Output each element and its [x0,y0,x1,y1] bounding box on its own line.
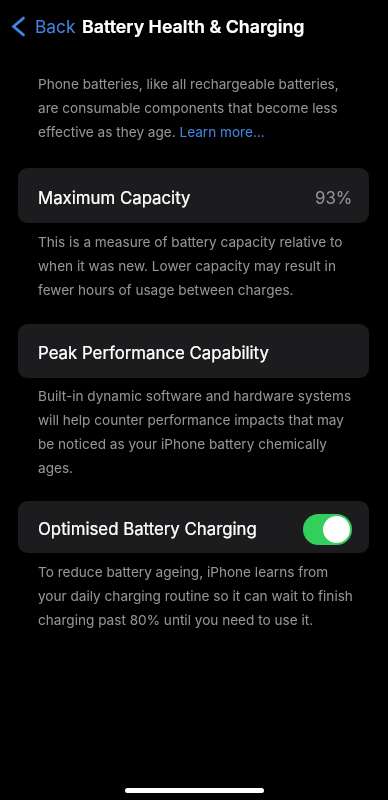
staticText: Optimised Battery Charging [38,519,257,539]
staticText: Built-in dynamic software and hardware s… [38,382,352,478]
staticText: Battery Health & Charging [82,16,305,38]
button[interactable]: Optimised Battery Charging [303,514,352,545]
staticText: Back [35,16,76,37]
staticText: This is a measure of battery capacity re… [38,228,343,300]
button[interactable]: Back [0,13,82,40]
staticText: Phone batteries, like all rechargeable b… [38,70,339,142]
button[interactable]: Learn more [179,123,265,141]
button[interactable]: Peak Performance Capability [18,324,369,378]
staticText: Peak Performance Capability [38,343,269,363]
staticText: 93% [315,188,353,208]
button[interactable]: Maximum Capacity [18,168,369,223]
staticText: To reduce battery ageing, iPhone learns … [38,558,353,630]
button[interactable]: Optimised Battery Charging [18,501,369,553]
staticText: Maximum Capacity [38,188,191,208]
